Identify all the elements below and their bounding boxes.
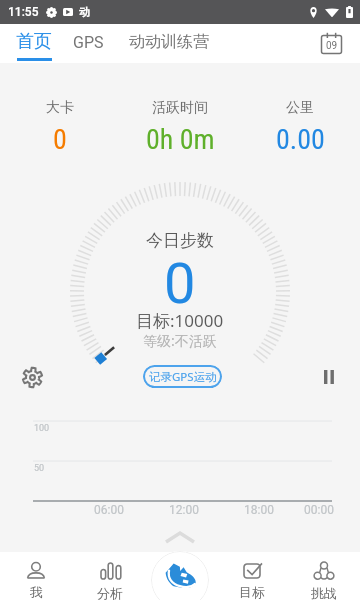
staticText: 0h 0m: [146, 123, 215, 156]
button[interactable]: Pause: [320, 368, 340, 388]
staticText: 动动训练营: [129, 32, 209, 52]
staticText: 目标:10000: [136, 309, 224, 332]
staticText: 06:00: [94, 503, 124, 517]
button[interactable]: Settings: [22, 367, 43, 388]
button[interactable]: 记录GPS运动: [143, 365, 222, 388]
staticText: 今日步数: [146, 230, 214, 251]
button[interactable]: 活跃时间: [120, 99, 240, 156]
staticText: 记录GPS运动: [149, 369, 217, 385]
staticText: 目标: [239, 584, 265, 600]
staticText: 挑战: [311, 585, 337, 600]
staticText: 活跃时间: [152, 99, 208, 117]
staticText: 等级:不活跃: [143, 331, 217, 350]
button[interactable]: 公里: [240, 99, 360, 156]
staticText: GPS: [73, 33, 104, 52]
staticText: 18:00: [244, 503, 274, 517]
button[interactable]: 分析: [80, 554, 140, 600]
button[interactable]: 大卡: [0, 99, 120, 156]
staticText: 分析: [97, 585, 123, 600]
button[interactable]: GPS: [66, 24, 111, 63]
staticText: 12:00: [169, 503, 199, 517]
button[interactable]: 目标: [222, 554, 282, 600]
staticText: 00:00: [304, 503, 334, 517]
staticText: 100: [34, 423, 50, 434]
staticText: 09: [326, 40, 338, 52]
staticText: 11:55: [8, 5, 39, 19]
button[interactable]: 挑战: [294, 554, 354, 600]
staticText: 动: [79, 5, 90, 19]
button[interactable]: 动动训练营: [121, 24, 216, 63]
staticText: 首页: [16, 30, 52, 53]
staticText: 0: [164, 251, 196, 317]
staticText: 我: [30, 584, 43, 600]
staticText: 公里: [286, 99, 314, 117]
staticText: 50: [34, 463, 45, 474]
staticText: 0: [53, 123, 67, 156]
button[interactable]: Start activity: [151, 551, 209, 600]
button[interactable]: 我: [6, 554, 66, 600]
button[interactable]: 首页: [9, 24, 59, 63]
staticText: 0.00: [276, 123, 325, 156]
staticText: 大卡: [46, 99, 74, 117]
button[interactable]: Calendar: [320, 32, 343, 55]
